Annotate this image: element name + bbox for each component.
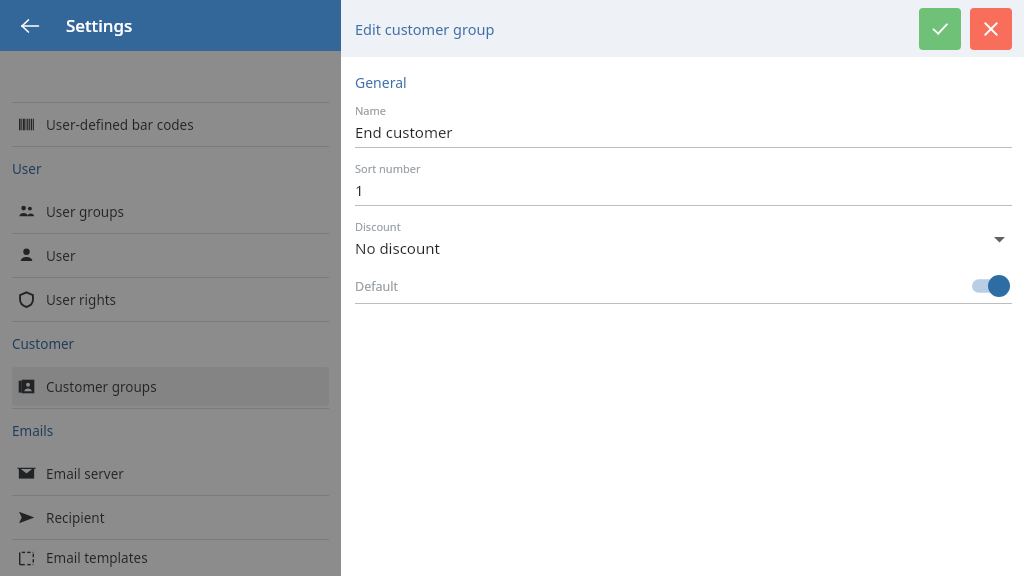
button[interactable]: User-defined bar codes [0, 103, 341, 146]
button[interactable]: Default [355, 271, 1012, 301]
button[interactable]: Cancel [970, 8, 1012, 50]
staticText: End customer [355, 122, 453, 142]
staticText: Settings [66, 14, 133, 37]
staticText: General [355, 73, 407, 92]
staticText: Emails [12, 422, 54, 440]
button[interactable]: User [0, 234, 341, 277]
staticText: Customer [12, 335, 75, 353]
button[interactable]: User groups [0, 190, 341, 233]
button[interactable]: Email templates [0, 540, 341, 576]
button[interactable]: Save [919, 8, 961, 50]
other: Open discount options [988, 228, 1010, 250]
staticText: User rights [46, 291, 117, 309]
staticText: Customer groups [46, 378, 157, 396]
staticText: Discount [355, 219, 401, 234]
button[interactable]: Recipient [0, 496, 341, 539]
staticText: User groups [46, 203, 124, 221]
staticText: User [46, 247, 76, 265]
staticText: No discount [355, 238, 440, 258]
staticText: 1 [355, 180, 364, 200]
staticText: Name [355, 103, 387, 118]
button[interactable]: Email server [0, 452, 341, 495]
staticText: User [12, 160, 42, 178]
button[interactable]: Customer groups [12, 367, 329, 406]
staticText: User-defined bar codes [46, 116, 194, 134]
button[interactable]: Discount [355, 219, 1012, 258]
staticText: Edit customer group [355, 19, 495, 39]
staticText: Email server [46, 465, 124, 483]
staticText: Recipient [46, 509, 105, 527]
button[interactable]: Back [12, 8, 48, 44]
staticText: Sort number [355, 161, 421, 176]
staticText: Email templates [46, 549, 148, 567]
staticText: Default [355, 278, 398, 295]
button[interactable]: User rights [0, 278, 341, 321]
